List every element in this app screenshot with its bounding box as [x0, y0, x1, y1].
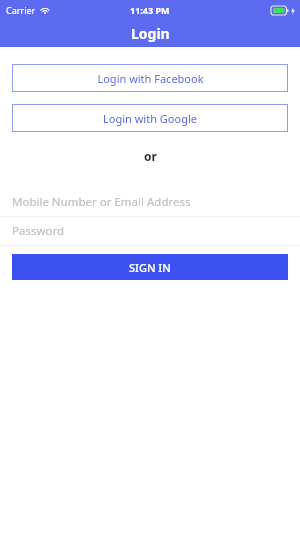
staticText: Password [12, 223, 65, 239]
staticText: Mobile Number or Email Address [12, 194, 191, 210]
staticText: 11:43 PM [130, 4, 170, 16]
button[interactable]: Mobile Number or Email Address [0, 188, 300, 217]
staticText: SIGN IN [129, 260, 171, 275]
staticText: Carrier [6, 4, 36, 16]
staticText: Login with Facebook [97, 71, 204, 86]
button[interactable]: Login with Facebook [12, 64, 288, 92]
staticText: or [144, 148, 157, 164]
button[interactable]: Login with Google [12, 104, 288, 132]
staticText: Login with Google [103, 111, 197, 126]
button[interactable]: SIGN IN [12, 254, 288, 280]
staticText: Login [131, 24, 170, 43]
button[interactable]: Password [0, 217, 300, 246]
